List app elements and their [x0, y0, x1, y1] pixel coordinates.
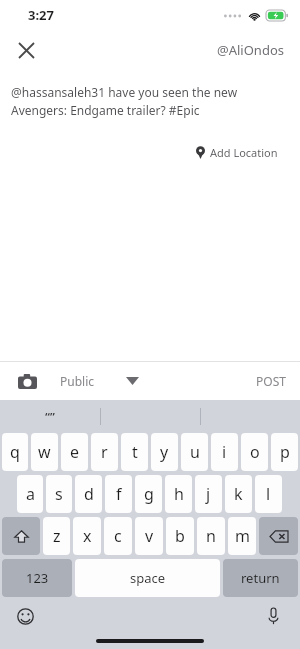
- button[interactable]: Dictate: [260, 603, 286, 629]
- staticText: z: [53, 525, 61, 547]
- button[interactable]: f: [105, 475, 132, 513]
- staticText: a: [26, 483, 35, 505]
- button[interactable]: Backspace: [259, 517, 298, 555]
- staticText: e: [70, 441, 80, 463]
- staticText: m: [235, 525, 250, 547]
- staticText: k: [234, 483, 243, 505]
- staticText: q: [10, 441, 20, 463]
- button[interactable]: x: [73, 517, 101, 555]
- button[interactable]: n: [197, 517, 225, 555]
- button[interactable]: d: [75, 475, 102, 513]
- button[interactable]: Public: [60, 373, 95, 389]
- button[interactable]: Add Location: [192, 141, 282, 164]
- staticText: s: [55, 483, 63, 505]
- staticText: x: [83, 525, 92, 547]
- button[interactable]: return: [223, 559, 298, 597]
- button[interactable]: m: [228, 517, 256, 555]
- staticText: i: [222, 441, 227, 463]
- staticText: 3:27: [28, 6, 54, 24]
- button[interactable]: u: [181, 433, 208, 471]
- button[interactable]: Shift: [2, 517, 40, 555]
- staticText: “”: [45, 409, 55, 424]
- staticText: j: [206, 483, 211, 505]
- staticText: f: [116, 483, 122, 505]
- staticText: Add Location: [210, 145, 278, 160]
- staticText: b: [175, 525, 185, 547]
- staticText: y: [160, 441, 169, 463]
- button[interactable]: c: [104, 517, 132, 555]
- button[interactable]: l: [255, 475, 282, 513]
- staticText: c: [114, 525, 122, 547]
- button[interactable]: @AliOndos: [217, 41, 284, 59]
- button[interactable]: i: [211, 433, 238, 471]
- button[interactable]: z: [43, 517, 70, 555]
- button[interactable]: “”: [0, 400, 100, 433]
- staticText: u: [190, 441, 200, 463]
- staticText: h: [174, 483, 184, 505]
- staticText: r: [101, 441, 108, 463]
- button[interactable]: v: [135, 517, 163, 555]
- button[interactable]: s: [46, 475, 72, 513]
- button[interactable]: w: [31, 433, 58, 471]
- button[interactable]: p: [271, 433, 298, 471]
- staticText: w: [38, 441, 51, 463]
- button[interactable]: o: [241, 433, 268, 471]
- button[interactable]: space: [75, 559, 220, 597]
- button[interactable]: g: [135, 475, 162, 513]
- staticText: p: [280, 441, 290, 463]
- staticText: n: [206, 525, 216, 547]
- staticText: t: [132, 441, 138, 463]
- button[interactable]: e: [61, 433, 88, 471]
- button[interactable]: r: [91, 433, 118, 471]
- staticText: 123: [26, 569, 49, 587]
- button[interactable]: k: [225, 475, 252, 513]
- button[interactable]: q: [2, 433, 28, 471]
- button[interactable]: h: [165, 475, 192, 513]
- staticText: @hassansaleh31 have you seen the new Ave…: [11, 84, 284, 119]
- button[interactable]: Close: [8, 32, 44, 68]
- button[interactable]: t: [121, 433, 148, 471]
- button[interactable]: j: [195, 475, 222, 513]
- staticText: d: [84, 483, 94, 505]
- button[interactable]: Change audience: [119, 368, 145, 394]
- staticText: o: [250, 441, 260, 463]
- staticText: return: [241, 569, 280, 587]
- staticText: l: [266, 483, 271, 505]
- button[interactable]: POST: [256, 373, 286, 389]
- button[interactable]: 123: [2, 559, 72, 597]
- staticText: v: [145, 525, 154, 547]
- staticText: g: [144, 483, 154, 505]
- staticText: space: [130, 569, 166, 587]
- button[interactable]: y: [151, 433, 178, 471]
- button[interactable]: Add photo: [14, 368, 40, 394]
- button[interactable]: Emoji: [12, 603, 38, 629]
- button[interactable]: b: [166, 517, 194, 555]
- button[interactable]: a: [17, 475, 43, 513]
